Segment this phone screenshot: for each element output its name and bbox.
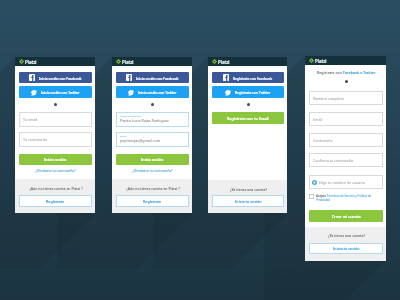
staticText: Platzi — [218, 59, 230, 65]
staticText: Tu contraseña — [23, 137, 47, 142]
button[interactable]: Regístrate con tu Email — [212, 112, 284, 124]
staticText: Inicia tu sesión — [235, 199, 262, 204]
staticText: Acepto — [316, 194, 327, 198]
button[interactable]: Regístrate con Facebook — [212, 72, 284, 83]
button[interactable]: Inicia tu sesión — [309, 243, 383, 254]
button[interactable]: Confirma tu contraseña — [309, 153, 383, 167]
staticText: Regístrate con tu Email — [227, 116, 269, 121]
button[interactable]: Inicia sesión con Twitter — [116, 86, 189, 98]
staticText: Confirma tu contraseña — [313, 158, 354, 163]
staticText: pepitarojas@gmail.com — [120, 138, 161, 143]
staticText: ¿Olvidaste tu contraseña? — [132, 168, 173, 173]
button[interactable]: Email — [309, 112, 383, 126]
staticText: Regístrate — [46, 199, 65, 204]
button[interactable]: Tu email — [19, 112, 92, 127]
staticText: Contraseña — [313, 138, 333, 143]
button[interactable]: Regístrate con — [309, 70, 383, 75]
button[interactable]: Contraseña — [309, 133, 383, 147]
button[interactable]: Inicia sesión con Facebook — [116, 72, 189, 83]
button[interactable]: Inicia sesión con Twitter — [19, 86, 92, 98]
staticText: Elige tu nombre de usuario — [319, 180, 365, 185]
staticText: ¿Aún no tienes cuenta en Platzi ? — [126, 186, 180, 191]
staticText: Inicia sesión — [141, 157, 164, 162]
staticText: Inicia sesión con Facebook — [136, 76, 179, 80]
button[interactable]: Nombre completo — [309, 91, 383, 105]
button[interactable]: Tu contraseña — [19, 132, 92, 147]
button[interactable]: Regístrate — [19, 195, 92, 207]
button[interactable]: Nombre completo — [116, 112, 189, 127]
staticText: Email — [313, 117, 323, 122]
button[interactable]: Regístrate con Twitter — [212, 86, 284, 98]
staticText: Tu email — [23, 117, 38, 122]
staticText: Nombre completo — [120, 114, 141, 117]
staticText: Email — [120, 134, 127, 137]
staticText: Regístrate con Twitter — [235, 90, 271, 94]
staticText: Crear mi cuenta — [332, 214, 361, 219]
button[interactable]: Inicia sesión con Facebook — [19, 72, 92, 83]
button[interactable]: Inicia tu sesión — [212, 195, 284, 207]
button[interactable]: Platzi — [208, 57, 287, 66]
staticText: Facebook o Twitter — [343, 70, 376, 75]
button[interactable]: Platzi — [305, 56, 386, 65]
staticText: Pepita Lucia Rojas Rodriguez — [120, 118, 169, 123]
staticText: Platzi — [315, 58, 327, 64]
staticText: Nombre completo — [313, 96, 344, 101]
button[interactable]: Email — [116, 132, 189, 147]
staticText: Inicia sesión con Twitter — [41, 90, 80, 94]
staticText: Regístrate — [143, 199, 162, 204]
staticText: ¿Ya tienes una cuenta? — [230, 187, 267, 192]
staticText: Platzi — [25, 59, 37, 65]
staticText: ¿Aún no tienes cuenta en Platzi ? — [29, 186, 83, 191]
staticText: Platzi — [122, 59, 134, 65]
button[interactable]: Elige tu nombre de usuario — [309, 175, 383, 189]
staticText: Privacidad — [316, 198, 330, 202]
staticText: Terminos de Servicio y Politica de — [327, 194, 372, 198]
staticText: Regístrate con Facebook — [233, 76, 273, 80]
button[interactable]: Platzi — [15, 57, 95, 66]
button[interactable]: Regístrate — [116, 195, 189, 207]
staticText: Inicia sesión con Facebook — [39, 76, 82, 80]
button[interactable]: Inicia sesión — [19, 154, 92, 165]
staticText: Inicia sesión con Twitter — [138, 90, 177, 94]
button[interactable]: Inicia sesión — [116, 154, 189, 165]
button[interactable]: Platzi — [112, 57, 192, 66]
staticText: Regístrate con — [317, 70, 343, 75]
staticText: ¿Ya tienes una cuenta? — [328, 233, 365, 238]
button[interactable]: Crear mi cuenta — [309, 210, 383, 222]
button[interactable]: Acepto — [309, 194, 383, 202]
staticText: Inicia sesión — [44, 157, 67, 162]
staticText: ¿Olvidaste tu contraseña? — [35, 168, 76, 173]
staticText: Inicia tu sesión — [333, 246, 360, 251]
